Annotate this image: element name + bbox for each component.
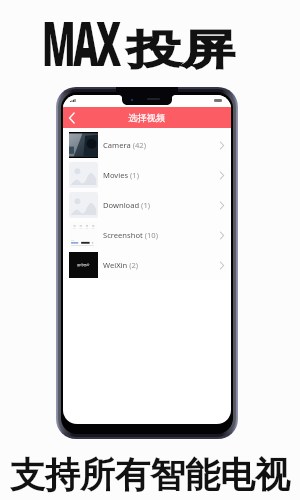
staticText: WeiXin (2) bbox=[103, 260, 139, 270]
staticText: MAX bbox=[42, 0, 119, 84]
button[interactable]: 微信图片 bbox=[63, 250, 231, 280]
button[interactable]: Camera (42) bbox=[63, 130, 231, 160]
staticText: 支持所有智能电视 bbox=[0, 453, 300, 497]
staticText: 选择视频 bbox=[128, 112, 166, 124]
staticText: 投屏 bbox=[127, 25, 235, 77]
staticText: 微信图片 bbox=[77, 263, 90, 267]
staticText: Download (1) bbox=[103, 200, 151, 210]
button[interactable]: Download (1) bbox=[63, 190, 231, 220]
staticText: Movies (1) bbox=[103, 170, 139, 180]
button[interactable]: Back bbox=[63, 107, 81, 128]
staticText: Screenshot (10) bbox=[103, 230, 158, 240]
button[interactable]: Screenshot (10) bbox=[63, 220, 231, 250]
button[interactable]: Movies (1) bbox=[63, 160, 231, 190]
staticText: Camera (42) bbox=[103, 140, 146, 150]
